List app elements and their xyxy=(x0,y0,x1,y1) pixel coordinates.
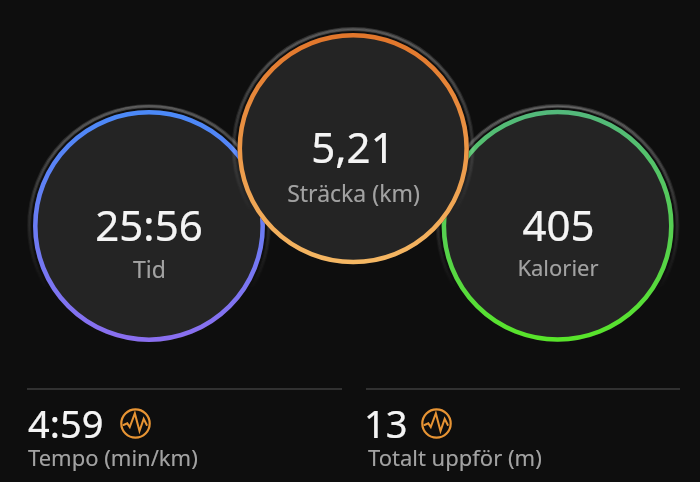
button[interactable]: View graph xyxy=(120,408,151,439)
staticText: 405 xyxy=(522,196,595,253)
staticText: 5,21 xyxy=(311,118,395,175)
staticText: 25:56 xyxy=(95,196,203,253)
staticText: 4:59 xyxy=(28,397,104,449)
staticText: Totalt uppför (m) xyxy=(368,442,542,472)
staticText: Kalorier xyxy=(517,252,599,282)
staticText: Tempo (min/km) xyxy=(28,442,198,472)
button[interactable]: View graph xyxy=(421,408,452,439)
staticText: Tid xyxy=(133,253,166,284)
staticText: Sträcka (km) xyxy=(287,177,420,208)
staticText: 13 xyxy=(364,397,408,449)
